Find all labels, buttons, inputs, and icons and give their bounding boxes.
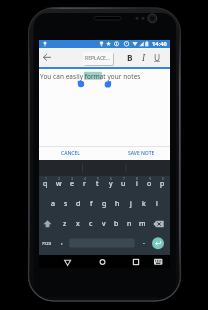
staticText: . [143, 237, 145, 247]
button[interactable]: o [143, 178, 156, 190]
staticText: CANCEL [61, 150, 80, 157]
button[interactable]: b [110, 218, 123, 230]
staticText: 9 [149, 176, 151, 181]
staticText: m [139, 219, 146, 229]
button[interactable]: y [104, 178, 117, 190]
staticText: 3 [71, 176, 73, 181]
staticText: e [70, 179, 74, 189]
button[interactable]: p [156, 178, 169, 190]
button[interactable]: r [78, 178, 91, 190]
staticText: h [115, 199, 120, 209]
button[interactable]: . [137, 236, 150, 248]
staticText: w [56, 179, 62, 189]
staticText: , [61, 237, 63, 247]
button[interactable]: i [130, 178, 143, 190]
button[interactable]: SAVE NOTE [123, 148, 159, 158]
staticText: x [76, 219, 80, 229]
staticText: y [109, 179, 113, 189]
staticText: o [147, 179, 152, 189]
staticText: b [114, 219, 119, 229]
staticText: 8 [136, 176, 138, 181]
staticText: r [83, 179, 86, 189]
button[interactable]: x [71, 218, 84, 230]
button[interactable]: s [59, 198, 72, 210]
button[interactable]: I [140, 52, 148, 62]
button[interactable]: h [111, 198, 124, 210]
staticText: d [76, 199, 81, 209]
button[interactable]: k [137, 198, 150, 210]
button[interactable]: t [91, 178, 104, 190]
button[interactable]: a [46, 198, 59, 210]
staticText: s [64, 199, 68, 209]
button[interactable] [39, 255, 82, 268]
button[interactable]: v [97, 218, 110, 230]
staticText: 4 [84, 176, 86, 181]
button[interactable]: q [39, 178, 52, 190]
button[interactable]: e [65, 178, 78, 190]
button[interactable]: n [123, 218, 136, 230]
button[interactable]: CANCEL [56, 148, 84, 158]
staticText: You can easily format your notes [40, 72, 141, 81]
button[interactable]: d [72, 198, 85, 210]
staticText: k [142, 199, 146, 209]
staticText: t [96, 179, 99, 189]
staticText: u [121, 179, 126, 189]
staticText: q [43, 179, 48, 189]
staticText: f [90, 199, 93, 209]
staticText: SAVE NOTE [128, 150, 155, 157]
staticText: REPLACE... [85, 55, 111, 62]
staticText: v [102, 219, 106, 229]
staticText: ?123 [42, 241, 52, 247]
button[interactable]: g [98, 198, 111, 210]
staticText: U [154, 52, 161, 62]
staticText: p [160, 179, 165, 189]
staticText: n [127, 219, 132, 229]
staticText: 6 [110, 176, 112, 181]
button[interactable]: j [124, 198, 137, 210]
staticText: l [156, 199, 158, 209]
button[interactable]: f [85, 198, 98, 210]
button[interactable]: w [52, 178, 65, 190]
button[interactable]: B [126, 52, 134, 62]
staticText: B [127, 52, 133, 62]
button[interactable]: , [55, 236, 68, 248]
staticText: 2 [58, 176, 60, 181]
button[interactable] [126, 255, 170, 268]
staticText: a [51, 199, 55, 209]
button[interactable]: m [136, 218, 149, 230]
button[interactable]: U [153, 52, 161, 62]
staticText: 1 [45, 176, 47, 181]
staticText: g [102, 199, 107, 209]
button[interactable] [82, 255, 126, 268]
staticText: 5 [97, 176, 99, 181]
staticText: I [142, 52, 146, 62]
button[interactable]: z [58, 218, 71, 230]
staticText: z [63, 219, 67, 229]
staticText: 0 [162, 176, 164, 181]
button[interactable]: c [84, 218, 97, 230]
staticText: 14:40 [152, 40, 167, 48]
button[interactable]: u [117, 178, 130, 190]
button[interactable]: l [150, 198, 163, 210]
button[interactable]: REPLACE... [83, 52, 113, 65]
staticText: i [136, 179, 138, 189]
staticText: c [89, 219, 93, 229]
staticText: j [130, 199, 132, 209]
staticText: 7 [123, 176, 125, 181]
